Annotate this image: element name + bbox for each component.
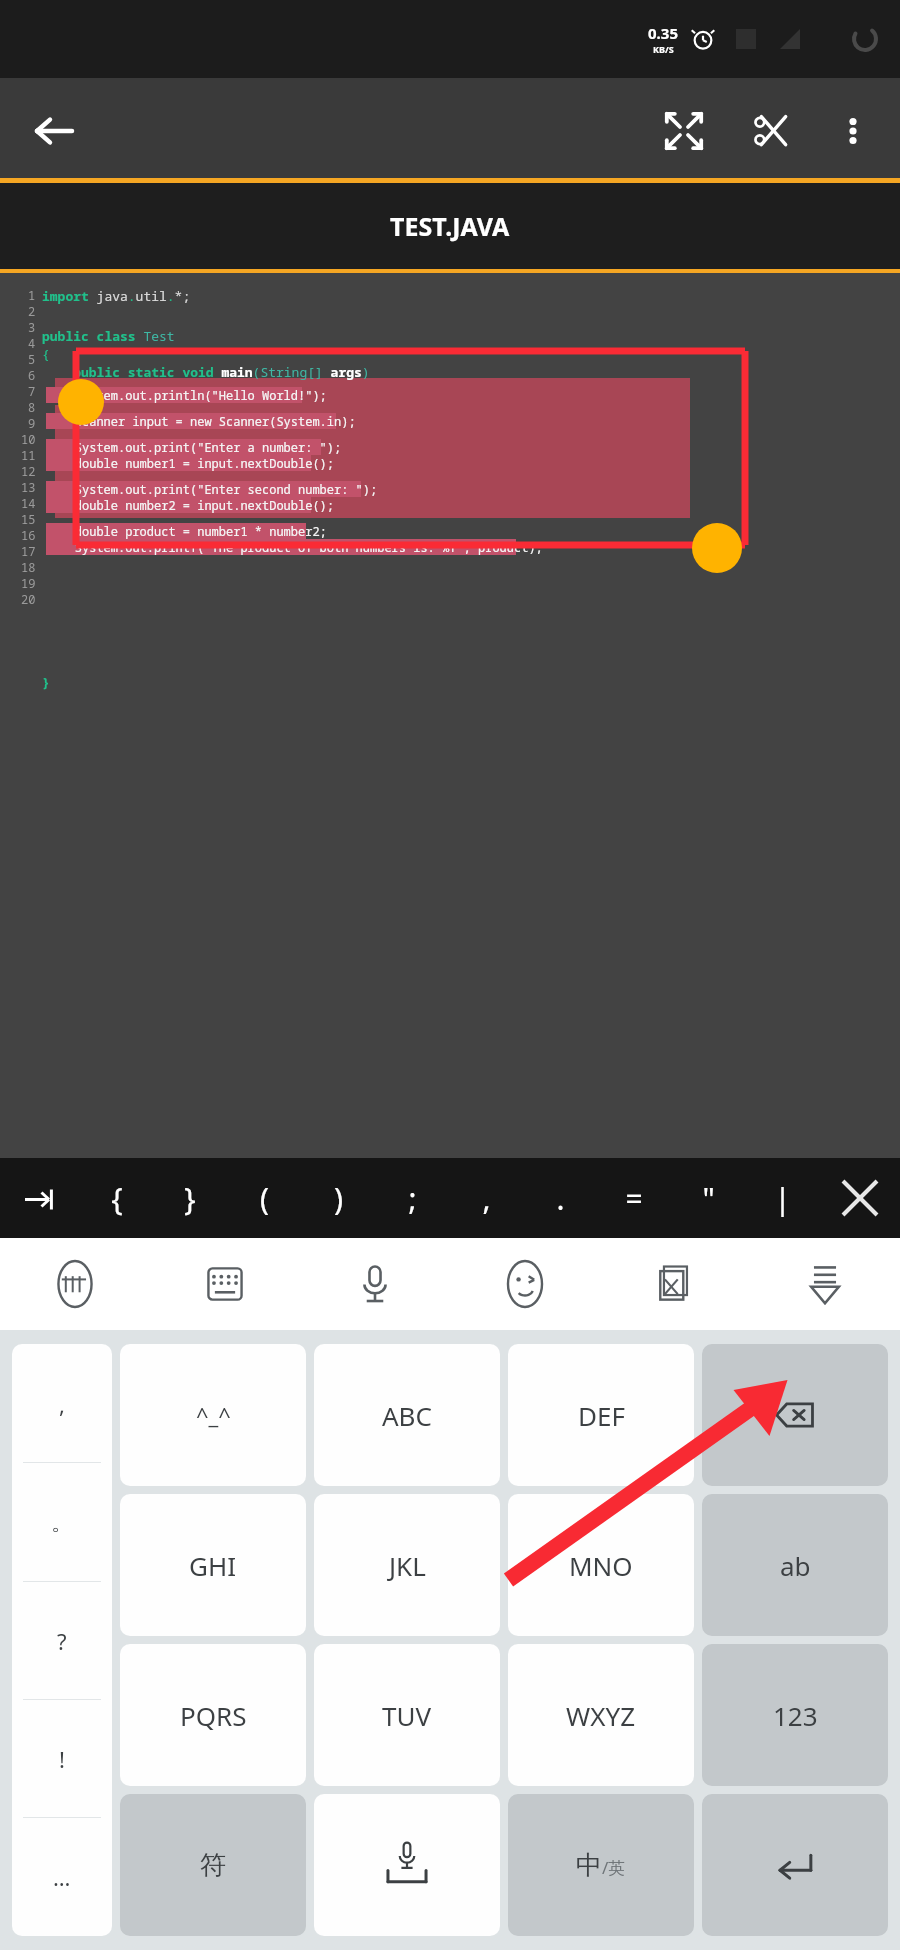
button[interactable]: Tab: [0, 1158, 80, 1238]
staticText: [42, 435, 50, 453]
staticText: public class Test: [42, 327, 175, 345]
button[interactable]: Input method: [0, 1238, 150, 1330]
button[interactable]: Cut: [736, 95, 808, 167]
staticText: [42, 489, 50, 507]
staticText: !: [59, 1744, 65, 1774]
button[interactable]: Enter: [702, 1794, 888, 1936]
staticText: [42, 507, 50, 525]
staticText: 19: [21, 575, 36, 591]
button[interactable]: |: [745, 1158, 819, 1238]
staticText: [42, 417, 50, 435]
staticText: public static void main(String[] args): [42, 363, 370, 381]
staticText: 15: [21, 511, 36, 527]
staticText: 7: [28, 383, 36, 399]
staticText: 2: [28, 303, 36, 319]
staticText: TEST.JAVA: [390, 209, 510, 243]
button[interactable]: 。: [12, 1463, 112, 1582]
staticText: 14: [21, 495, 36, 511]
staticText: 10: [21, 431, 36, 447]
staticText: [42, 471, 50, 489]
staticText: Scanner input = new Scanner(System.in);: [46, 413, 356, 429]
staticText: JKL: [389, 1548, 426, 1583]
button[interactable]: ,: [449, 1158, 523, 1238]
button[interactable]: .: [523, 1158, 597, 1238]
staticText: 11: [21, 447, 36, 463]
button[interactable]: DEF: [508, 1344, 694, 1486]
button[interactable]: Clipboard: [600, 1238, 750, 1330]
button[interactable]: ab: [702, 1494, 888, 1636]
button[interactable]: 符: [120, 1794, 306, 1936]
staticText: KB/S: [653, 43, 674, 55]
button[interactable]: 中/英: [508, 1794, 694, 1936]
staticText: =: [625, 1178, 643, 1219]
button[interactable]: ": [671, 1158, 745, 1238]
staticText: System.out.print("Enter second number: "…: [46, 481, 378, 497]
button[interactable]: PQRS: [120, 1644, 306, 1786]
staticText: System.out.print("Enter a number: ");: [46, 439, 342, 455]
staticText: WXYZ: [566, 1698, 636, 1733]
button[interactable]: Close: [819, 1158, 900, 1238]
button[interactable]: JKL: [314, 1494, 500, 1636]
staticText: double number2 = input.nextDouble();: [46, 497, 335, 513]
button[interactable]: WXYZ: [508, 1644, 694, 1786]
staticText: [42, 453, 50, 471]
button[interactable]: ?: [12, 1582, 112, 1700]
staticText: {: [42, 345, 50, 363]
button[interactable]: Emoji: [450, 1238, 600, 1330]
button[interactable]: GHI: [120, 1494, 306, 1636]
button[interactable]: (: [227, 1158, 301, 1238]
staticText: ": [702, 1178, 715, 1219]
button[interactable]: Fullscreen: [648, 95, 720, 167]
staticText: MNO: [569, 1548, 633, 1583]
button[interactable]: MNO: [508, 1494, 694, 1636]
staticText: double number1 = input.nextDouble();: [46, 455, 335, 471]
staticText: }: [42, 673, 50, 691]
staticText: …: [53, 1862, 71, 1892]
staticText: import java.util.*;: [42, 287, 191, 305]
button[interactable]: Back: [22, 100, 84, 162]
button[interactable]: ): [301, 1158, 375, 1238]
button[interactable]: …: [12, 1818, 112, 1936]
staticText: GHI: [189, 1548, 237, 1583]
staticText: 。: [51, 1509, 73, 1537]
button[interactable]: ABC: [314, 1344, 500, 1486]
button[interactable]: More options: [820, 98, 886, 164]
button[interactable]: ,: [12, 1344, 112, 1463]
staticText: 20: [21, 591, 36, 607]
staticText: 1: [28, 287, 36, 303]
button[interactable]: Space: [314, 1794, 500, 1936]
staticText: ABC: [382, 1398, 432, 1433]
staticText: ,: [482, 1178, 491, 1219]
staticText: double product = number1 * number2;: [46, 523, 327, 539]
button[interactable]: Delete: [702, 1344, 888, 1486]
button[interactable]: Voice input: [300, 1238, 450, 1330]
button[interactable]: ;: [375, 1158, 449, 1238]
staticText: 12: [21, 463, 36, 479]
button[interactable]: Hide keyboard: [750, 1238, 900, 1330]
button[interactable]: !: [12, 1700, 112, 1818]
staticText: [42, 399, 50, 417]
staticText: 8: [28, 399, 36, 415]
staticText: ab: [780, 1548, 811, 1583]
staticText: ;: [408, 1178, 417, 1219]
staticText: .: [556, 1178, 565, 1219]
staticText: System.out.printf("The product of both n…: [46, 539, 543, 555]
staticText: TUV: [382, 1698, 432, 1733]
staticText: 3: [28, 319, 36, 335]
button[interactable]: =: [597, 1158, 671, 1238]
button[interactable]: Keyboard layout: [150, 1238, 300, 1330]
button[interactable]: }: [153, 1158, 227, 1238]
staticText: 中/英: [576, 1849, 626, 1882]
button[interactable]: {: [80, 1158, 153, 1238]
button[interactable]: ^_^: [120, 1344, 306, 1486]
staticText: 17: [21, 543, 36, 559]
staticText: {: [111, 1178, 123, 1219]
staticText: ): [334, 1178, 343, 1219]
button[interactable]: TUV: [314, 1644, 500, 1786]
button[interactable]: 123: [702, 1644, 888, 1786]
staticText: 符: [200, 1849, 226, 1882]
